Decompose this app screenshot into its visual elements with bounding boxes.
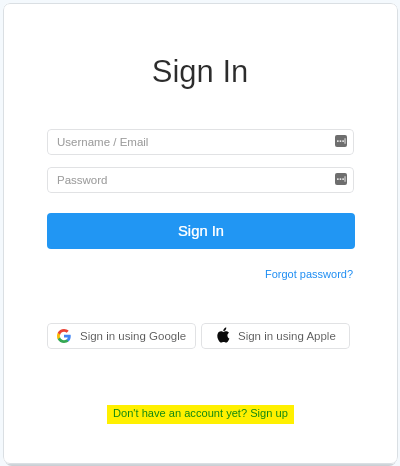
button[interactable]: Password	[47, 167, 354, 193]
staticText: Sign in using Google	[80, 330, 187, 343]
staticText: Don't have an account yet? Sign up	[113, 407, 288, 419]
button[interactable]: Sign in using Apple	[201, 323, 350, 349]
staticText: Sign In	[178, 223, 225, 240]
staticText: Password	[57, 174, 108, 187]
staticText: Sign in using Apple	[238, 330, 336, 343]
button[interactable]: Use saved password	[335, 173, 347, 185]
button[interactable]: Use saved password	[335, 135, 347, 147]
button[interactable]: Sign In	[47, 213, 355, 249]
button[interactable]: Forgot password?	[265, 268, 354, 280]
staticText: Username / Email	[57, 136, 149, 149]
button[interactable]: Username / Email	[47, 129, 354, 155]
button[interactable]: Sign in using Google	[47, 323, 196, 349]
button[interactable]: Don't have an account yet? Sign up	[107, 405, 294, 424]
staticText: Sign In	[0, 54, 400, 89]
